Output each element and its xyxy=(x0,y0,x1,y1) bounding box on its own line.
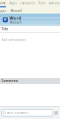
staticText: Account xyxy=(49,1,60,5)
staticText: Home xyxy=(0,1,6,5)
staticText: Word xyxy=(10,15,22,21)
staticText: W xyxy=(4,18,7,21)
staticText: Tools xyxy=(38,1,45,5)
staticText: Write a comment xyxy=(6,111,28,115)
staticText: Add a description xyxy=(2,38,27,42)
button[interactable]: Apps xyxy=(9,0,16,9)
staticText: Comments xyxy=(2,79,18,83)
button[interactable]: Categories xyxy=(20,0,35,9)
staticText: Apps xyxy=(9,1,16,5)
staticText: Categories xyxy=(20,1,35,5)
staticText: Apps › Microsoft xyxy=(0,9,22,13)
button[interactable]: Send xyxy=(54,111,58,115)
button[interactable]: Home xyxy=(0,0,6,9)
staticText: Microsoft xyxy=(10,21,22,24)
button[interactable]: Account xyxy=(49,0,60,9)
staticText: Title xyxy=(2,27,9,31)
button[interactable]: Tools xyxy=(38,0,45,9)
